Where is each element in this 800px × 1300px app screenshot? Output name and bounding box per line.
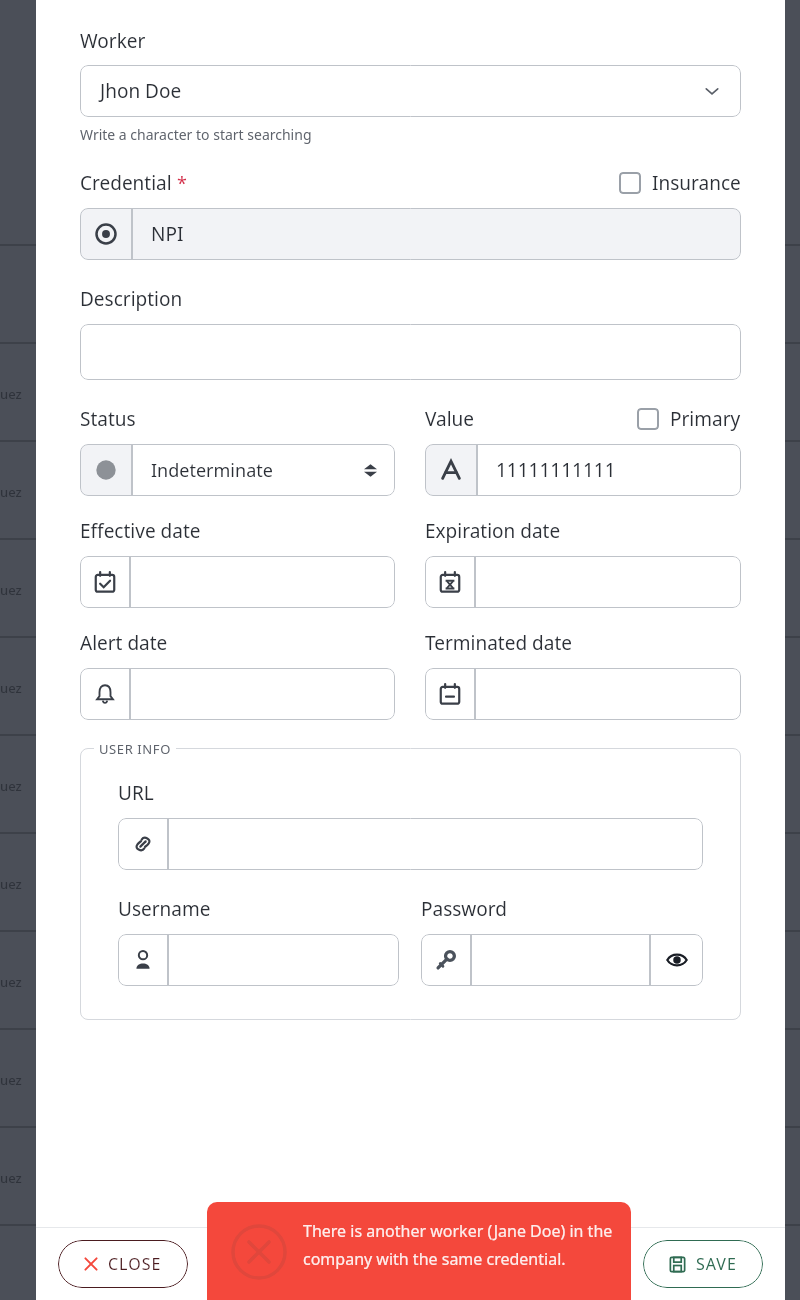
button[interactable]: Show password (421, 934, 703, 986)
staticText: Insurance (652, 170, 741, 196)
staticText: Jhon Doe (100, 78, 182, 104)
staticText: 11111111111 (496, 457, 616, 483)
staticText: URL (118, 780, 154, 806)
staticText: USER INFO (99, 740, 171, 758)
staticText: NPI (151, 221, 184, 247)
staticText: Password (421, 896, 507, 922)
staticText: Value (425, 406, 475, 432)
button[interactable]: Insurance (619, 170, 741, 196)
staticText: uez (0, 875, 22, 893)
staticText: uez (0, 581, 22, 599)
staticText: There is another worker (Jane Doe) in th… (303, 1220, 631, 1270)
staticText: uez (0, 385, 22, 403)
button[interactable] (425, 668, 741, 720)
button[interactable] (80, 556, 395, 608)
button[interactable]: CLOSE (58, 1240, 188, 1288)
button[interactable]: NPI (80, 208, 741, 260)
button[interactable] (80, 324, 741, 380)
staticText: uez (0, 1169, 22, 1187)
staticText: CLOSE (108, 1253, 162, 1275)
staticText: Terminated date (425, 630, 572, 656)
staticText: Worker (80, 28, 146, 54)
button[interactable]: SAVE (643, 1240, 763, 1288)
button[interactable]: Jhon Doe (80, 65, 741, 117)
staticText: Credential (80, 170, 172, 196)
button[interactable] (425, 556, 741, 608)
staticText: Expiration date (425, 518, 561, 544)
button[interactable] (118, 818, 703, 870)
staticText: uez (0, 679, 22, 697)
button[interactable]: 11111111111 (425, 444, 741, 496)
staticText: Effective date (80, 518, 201, 544)
button[interactable]: Show password (651, 934, 703, 986)
staticText: Indeterminate (151, 458, 273, 483)
staticText: Username (118, 896, 211, 922)
button[interactable]: Indeterminate (80, 444, 395, 496)
staticText: uez (0, 777, 22, 795)
staticText: uez (0, 973, 22, 991)
staticText: SAVE (696, 1253, 737, 1275)
button[interactable] (118, 934, 399, 986)
staticText: Alert date (80, 630, 168, 656)
staticText: * (177, 171, 187, 196)
staticText: uez (0, 1071, 22, 1089)
staticText: Status (80, 406, 136, 432)
button[interactable]: There is another worker (Jane Doe) in th… (207, 1202, 631, 1300)
staticText: Write a character to start searching (80, 125, 312, 144)
staticText: uez (0, 483, 22, 501)
staticText: Description (80, 286, 183, 312)
staticText: Primary (670, 406, 741, 432)
button[interactable]: Primary (637, 406, 741, 432)
button[interactable] (80, 668, 395, 720)
